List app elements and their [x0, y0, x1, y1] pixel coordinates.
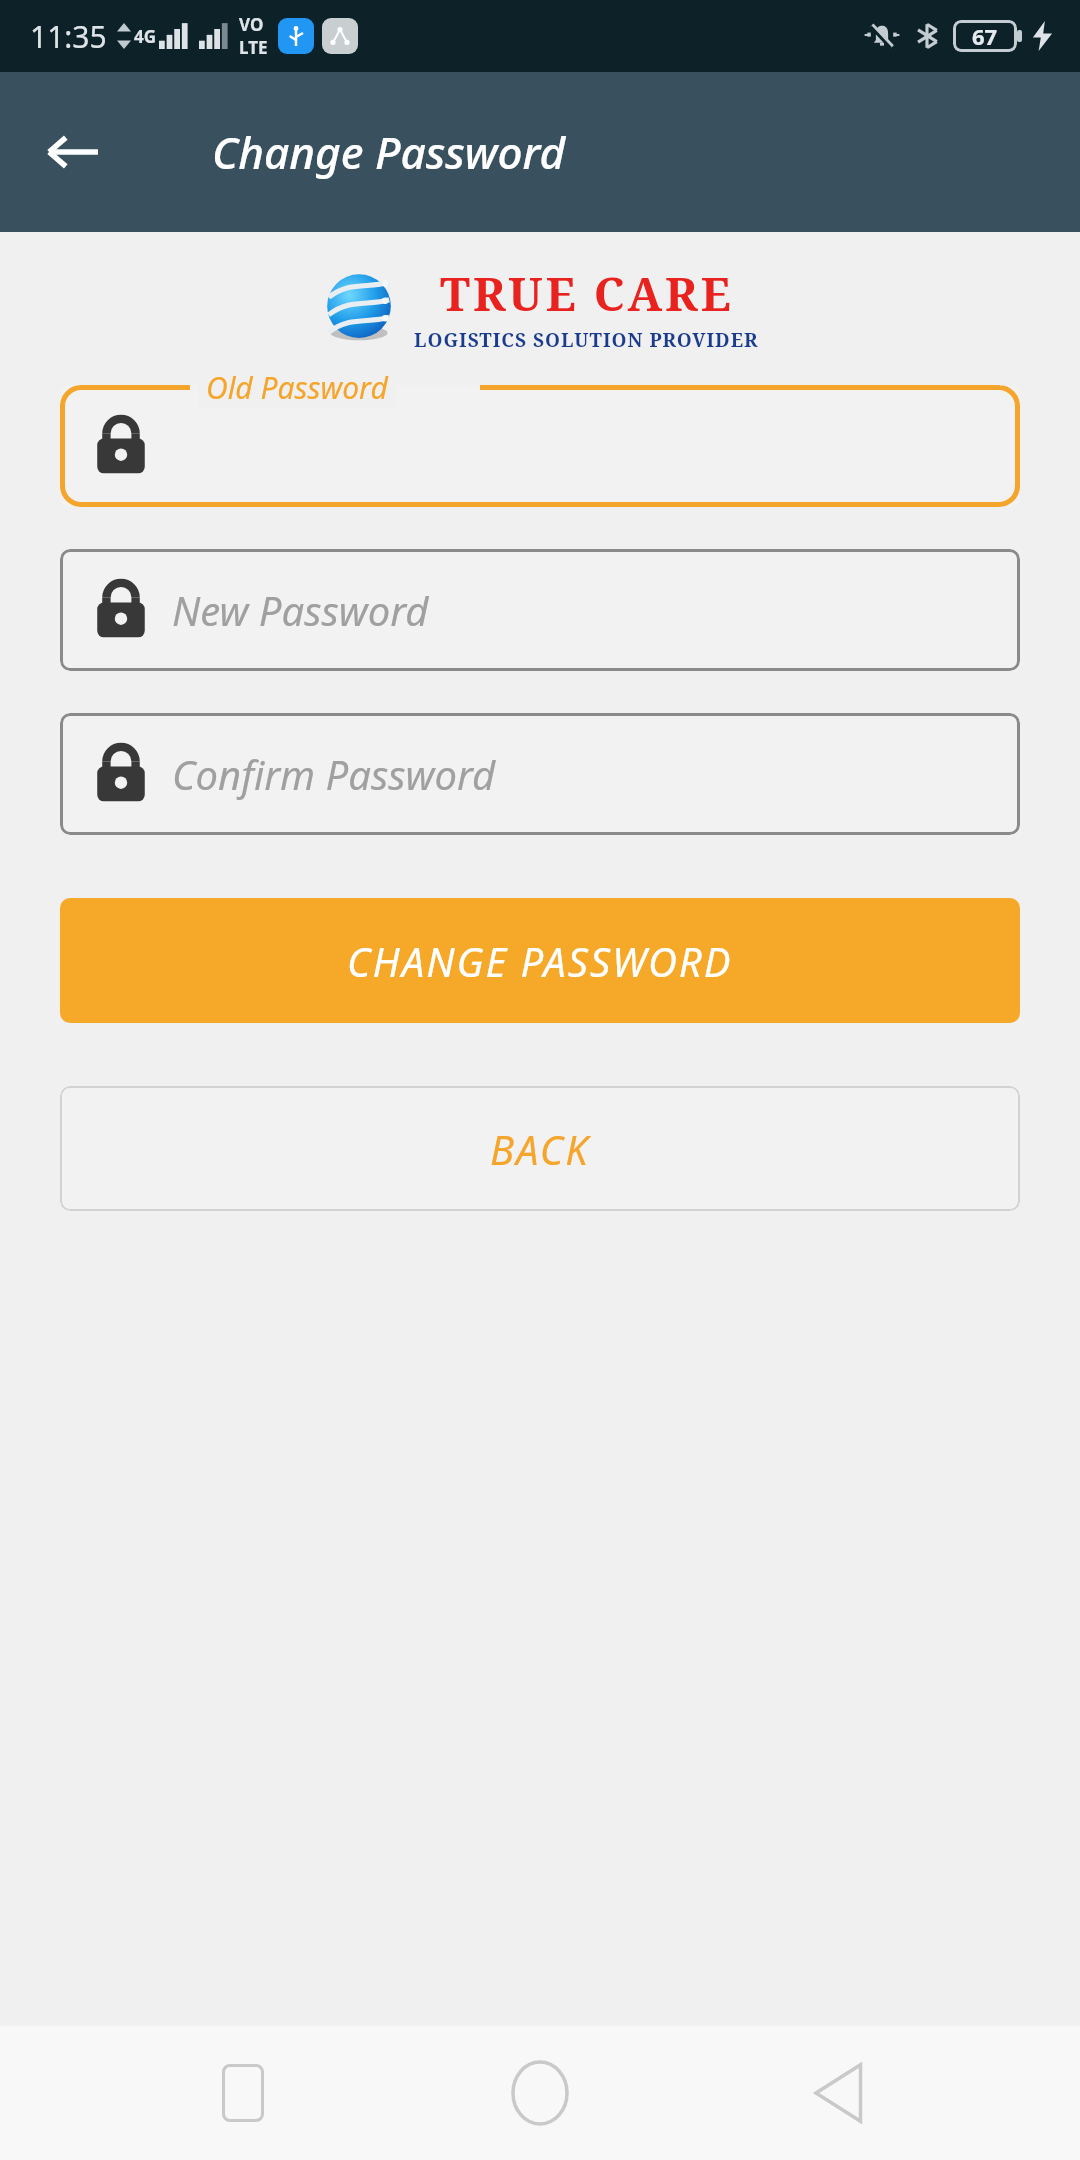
staticText: 67 [972, 21, 998, 51]
staticText: 11:35 [30, 16, 107, 57]
staticText: Confirm Password [172, 747, 496, 801]
staticText: BACK [490, 1122, 590, 1176]
button[interactable]: Home [485, 2038, 595, 2148]
staticText: CHANGE PASSWORD [347, 934, 733, 988]
button[interactable]: Back [40, 120, 104, 184]
button[interactable] [60, 385, 1020, 507]
staticText: 4G [134, 25, 157, 48]
staticText: LOGISTICS SOLUTION PROVIDER [414, 327, 759, 353]
staticText: LTE [239, 36, 268, 59]
staticText: TRUE CARE [440, 262, 734, 325]
staticText: Old Password [206, 367, 388, 408]
button[interactable]: CHANGE PASSWORD [60, 898, 1020, 1023]
button[interactable]: Recent apps [188, 2038, 298, 2148]
button[interactable]: Back [783, 2038, 893, 2148]
button[interactable]: BACK [60, 1086, 1020, 1211]
staticText: VO [239, 13, 264, 36]
button[interactable]: Confirm Password [60, 713, 1020, 835]
staticText: Change Password [212, 122, 566, 182]
staticText: New Password [172, 583, 429, 637]
button[interactable]: New Password [60, 549, 1020, 671]
